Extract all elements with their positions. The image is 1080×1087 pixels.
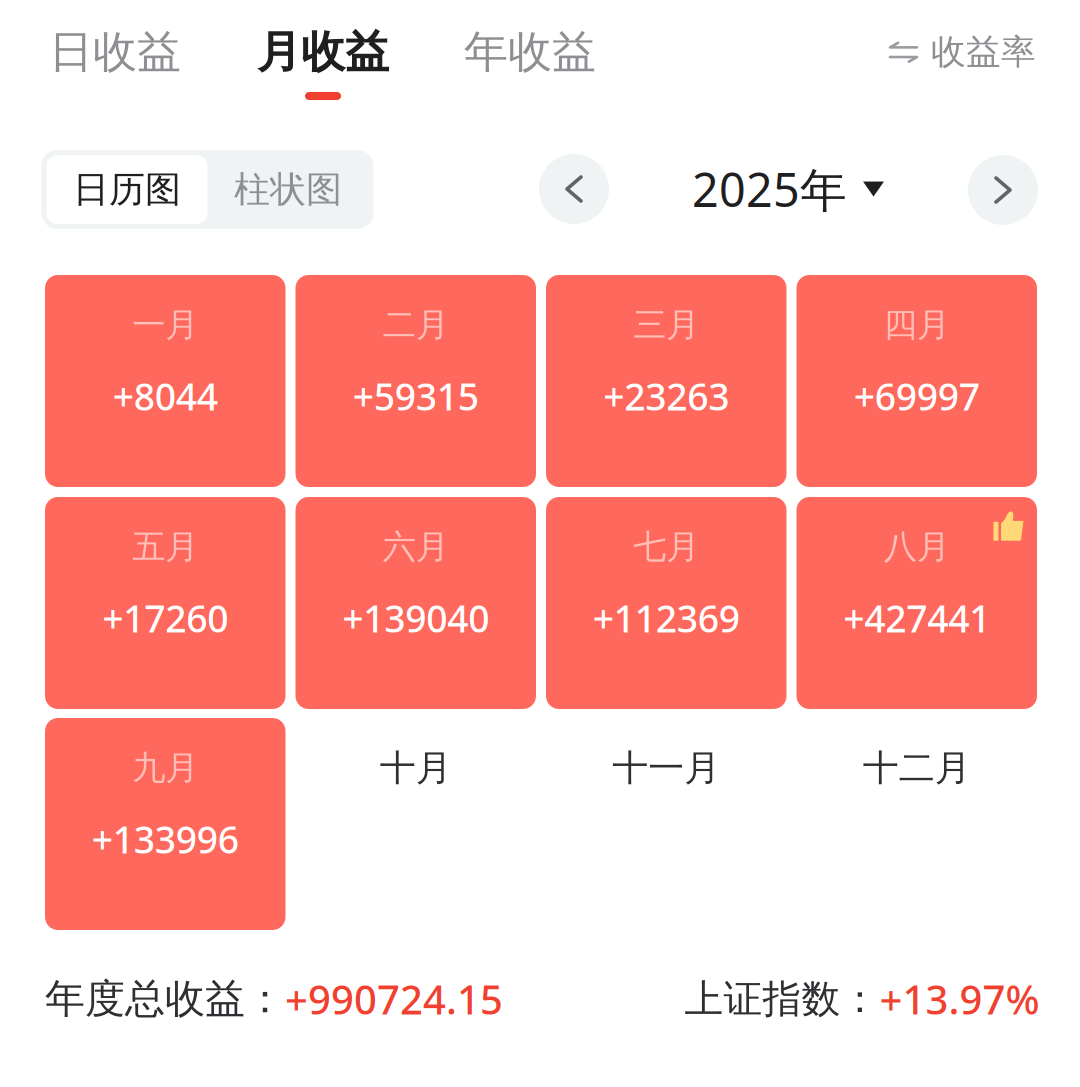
- staticText: +990724.15: [285, 972, 503, 1025]
- staticText: 一月: [132, 304, 198, 345]
- staticText: 上证指数：: [684, 975, 879, 1023]
- button[interactable]: 九月: [45, 718, 285, 930]
- staticText: 二月: [383, 304, 449, 345]
- staticText: 年收益: [464, 25, 596, 79]
- button[interactable]: Previous year: [539, 154, 609, 224]
- staticText: 六月: [383, 526, 449, 567]
- staticText: 柱状图: [234, 167, 342, 212]
- button[interactable]: 年收益: [440, 0, 620, 120]
- button[interactable]: Next year: [968, 155, 1038, 225]
- staticText: 2025年: [692, 158, 847, 220]
- staticText: 八月: [884, 526, 950, 567]
- button[interactable]: 收益率: [890, 17, 1036, 87]
- staticText: 十月: [380, 746, 452, 790]
- button[interactable]: 十一月: [546, 718, 786, 930]
- button[interactable]: 二月: [295, 275, 536, 487]
- staticText: +69997: [854, 371, 980, 421]
- staticText: +112369: [593, 593, 740, 643]
- staticText: +133996: [92, 814, 239, 864]
- button[interactable]: 一月: [45, 275, 285, 487]
- button[interactable]: 六月: [295, 497, 536, 709]
- staticText: +23263: [603, 371, 729, 421]
- staticText: 月收益: [257, 25, 389, 79]
- staticText: +59315: [353, 371, 479, 421]
- button[interactable]: 日历图: [46, 155, 207, 224]
- staticText: 十二月: [863, 746, 971, 790]
- button[interactable]: 月收益: [233, 0, 413, 120]
- staticText: 年度总收益：: [45, 974, 285, 1023]
- staticText: +139040: [342, 593, 489, 643]
- button[interactable]: 十月: [295, 718, 536, 930]
- button[interactable]: 日收益: [25, 0, 205, 120]
- button[interactable]: 七月: [546, 497, 786, 709]
- staticText: +17260: [102, 593, 228, 643]
- button[interactable]: 2025年: [692, 142, 884, 236]
- staticText: 五月: [132, 526, 198, 567]
- staticText: 四月: [884, 304, 950, 345]
- staticText: 日收益: [49, 25, 181, 79]
- button[interactable]: 五月: [45, 497, 285, 709]
- staticText: 九月: [132, 747, 198, 788]
- staticText: +8044: [113, 371, 218, 421]
- button[interactable]: 八月: [796, 497, 1037, 709]
- staticText: 日历图: [73, 167, 181, 212]
- button[interactable]: 四月: [796, 275, 1037, 487]
- button[interactable]: 柱状图: [207, 155, 368, 224]
- staticText: 三月: [633, 304, 699, 345]
- staticText: +13.97%: [879, 972, 1039, 1025]
- staticText: 十一月: [612, 746, 720, 790]
- staticText: 收益率: [931, 31, 1036, 73]
- button[interactable]: 十二月: [796, 718, 1037, 930]
- button[interactable]: 三月: [546, 275, 786, 487]
- staticText: 七月: [633, 526, 699, 567]
- staticText: +427441: [843, 593, 990, 643]
